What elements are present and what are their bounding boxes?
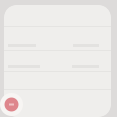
button[interactable]: Record	[0, 93, 23, 116]
